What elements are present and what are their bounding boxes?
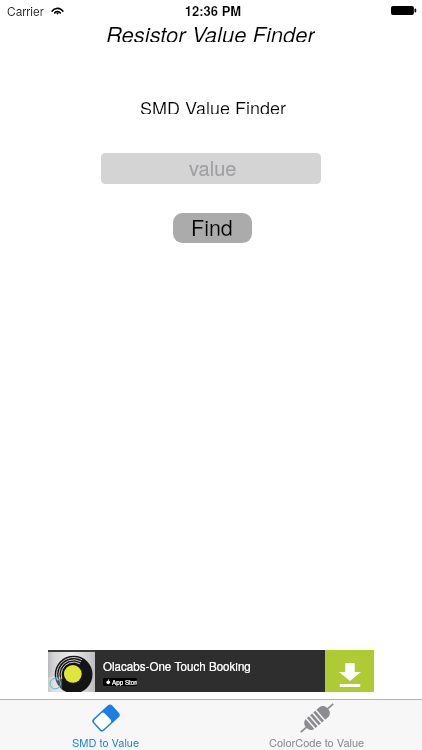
other: ColorCode to Value (299, 702, 335, 734)
staticText: Resistor Value Finder (106, 18, 315, 42)
button[interactable]: ColorCode to Value (211, 700, 422, 750)
button[interactable]: SMD to Value (0, 700, 211, 750)
button[interactable]: Find (173, 213, 252, 243)
other: SMD to Value (90, 704, 122, 732)
staticText: Carrier (7, 2, 44, 19)
button[interactable]: value (101, 153, 321, 184)
button[interactable]: Olacabs-One Touch Booking (48, 650, 374, 692)
staticText: App Store (112, 678, 137, 686)
staticText: 12:36 PM (2, 1, 422, 20)
staticText: SMD to Value (72, 734, 140, 750)
staticText: value (189, 153, 237, 182)
staticText: ColorCode to Value (269, 734, 365, 750)
staticText: Olacabs-One Touch Booking (103, 658, 251, 675)
staticText: SMD Value Finder (140, 94, 286, 114)
staticText: Find (191, 213, 233, 241)
